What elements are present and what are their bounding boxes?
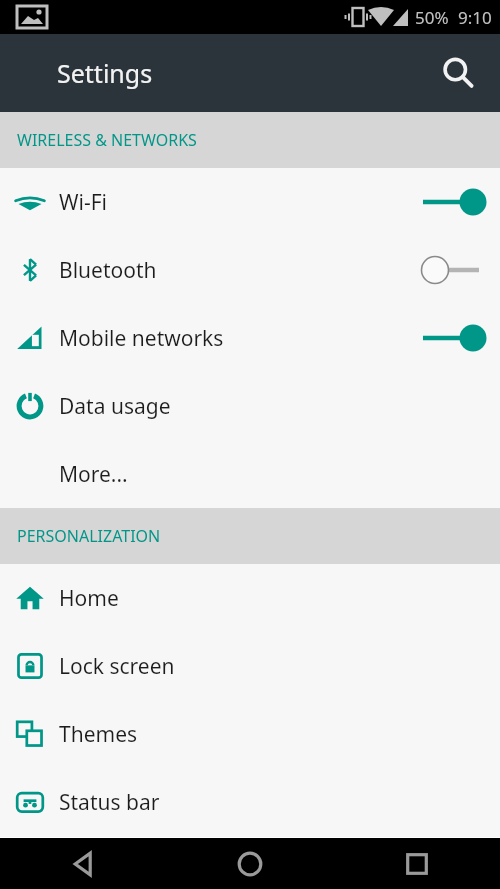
button[interactable]: Wi-Fi xyxy=(0,168,500,236)
staticText: Status bar xyxy=(59,788,160,817)
staticText: Data usage xyxy=(59,392,171,421)
button[interactable]: Home xyxy=(0,564,500,632)
staticText: PERSONALIZATION xyxy=(17,525,161,547)
button[interactable]: Bluetooth xyxy=(0,236,500,304)
button[interactable]: More... xyxy=(0,440,500,508)
staticText: WIRELESS & NETWORKS xyxy=(17,129,197,151)
button[interactable]: Home xyxy=(166,838,333,889)
staticText: 50% xyxy=(415,6,449,29)
button[interactable]: Data usage xyxy=(0,372,500,440)
staticText: More... xyxy=(59,460,128,489)
staticText: 9:10 xyxy=(458,6,492,29)
staticText: Home xyxy=(59,584,119,613)
button[interactable]: Search xyxy=(434,49,482,97)
staticText: Bluetooth xyxy=(59,256,157,285)
staticText: Lock screen xyxy=(59,652,175,681)
button[interactable]: Mobile networks xyxy=(0,304,500,372)
staticText: Mobile networks xyxy=(59,324,224,353)
button[interactable]: Back xyxy=(0,838,166,889)
button[interactable]: Recent apps xyxy=(333,838,500,889)
button[interactable]: Lock screen xyxy=(0,632,500,700)
button[interactable]: Status bar xyxy=(0,768,500,836)
staticText: Settings xyxy=(57,56,153,90)
button[interactable] xyxy=(404,236,500,304)
button[interactable] xyxy=(404,168,500,236)
staticText: Themes xyxy=(59,720,138,749)
button[interactable]: Themes xyxy=(0,700,500,768)
button[interactable] xyxy=(404,304,500,372)
staticText: Wi-Fi xyxy=(59,188,108,217)
